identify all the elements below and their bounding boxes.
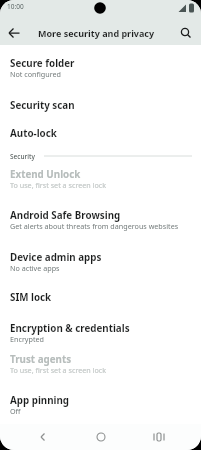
button[interactable]: Extend Unlock [0, 167, 201, 181]
button[interactable] [81, 424, 121, 450]
staticText: Trust agents [10, 353, 72, 366]
staticText: SIM lock [10, 291, 52, 304]
button[interactable]: App pinning [0, 393, 201, 407]
button[interactable] [4, 23, 24, 43]
staticText: Security [10, 152, 35, 161]
button[interactable] [139, 424, 179, 450]
staticText: Android Safe Browsing [10, 209, 121, 222]
button[interactable]: Encryption & credentials [0, 321, 201, 335]
staticText: Auto-lock [10, 127, 57, 140]
staticText: Encryption & credentials [10, 322, 130, 335]
staticText: Encrypted [10, 334, 45, 344]
staticText: To use, first set a screen lock [10, 180, 107, 190]
staticText: 10:00 [7, 2, 24, 11]
staticText: App pinning [10, 394, 70, 407]
button[interactable] [176, 23, 196, 43]
button[interactable]: Device admin apps [0, 250, 201, 264]
staticText: Get alerts about threats from dangerous … [10, 221, 179, 231]
staticText: More security and privacy [38, 27, 155, 39]
staticText: No active apps [10, 263, 60, 273]
staticText: Not configured [10, 69, 62, 79]
button[interactable]: Android Safe Browsing [0, 208, 201, 222]
button[interactable]: Security scan [0, 98, 201, 112]
button[interactable] [23, 424, 63, 450]
button[interactable]: Auto-lock [0, 126, 201, 140]
staticText: Extend Unlock [10, 168, 81, 181]
button[interactable]: Secure folder [0, 56, 201, 70]
staticText: Secure folder [10, 57, 75, 70]
staticText: Device admin apps [10, 251, 102, 264]
staticText: Security scan [10, 99, 75, 112]
staticText: To use, first set a screen lock [10, 365, 107, 375]
button[interactable]: SIM lock [0, 290, 201, 304]
button[interactable]: Trust agents [0, 352, 201, 366]
staticText: Off [10, 406, 21, 416]
